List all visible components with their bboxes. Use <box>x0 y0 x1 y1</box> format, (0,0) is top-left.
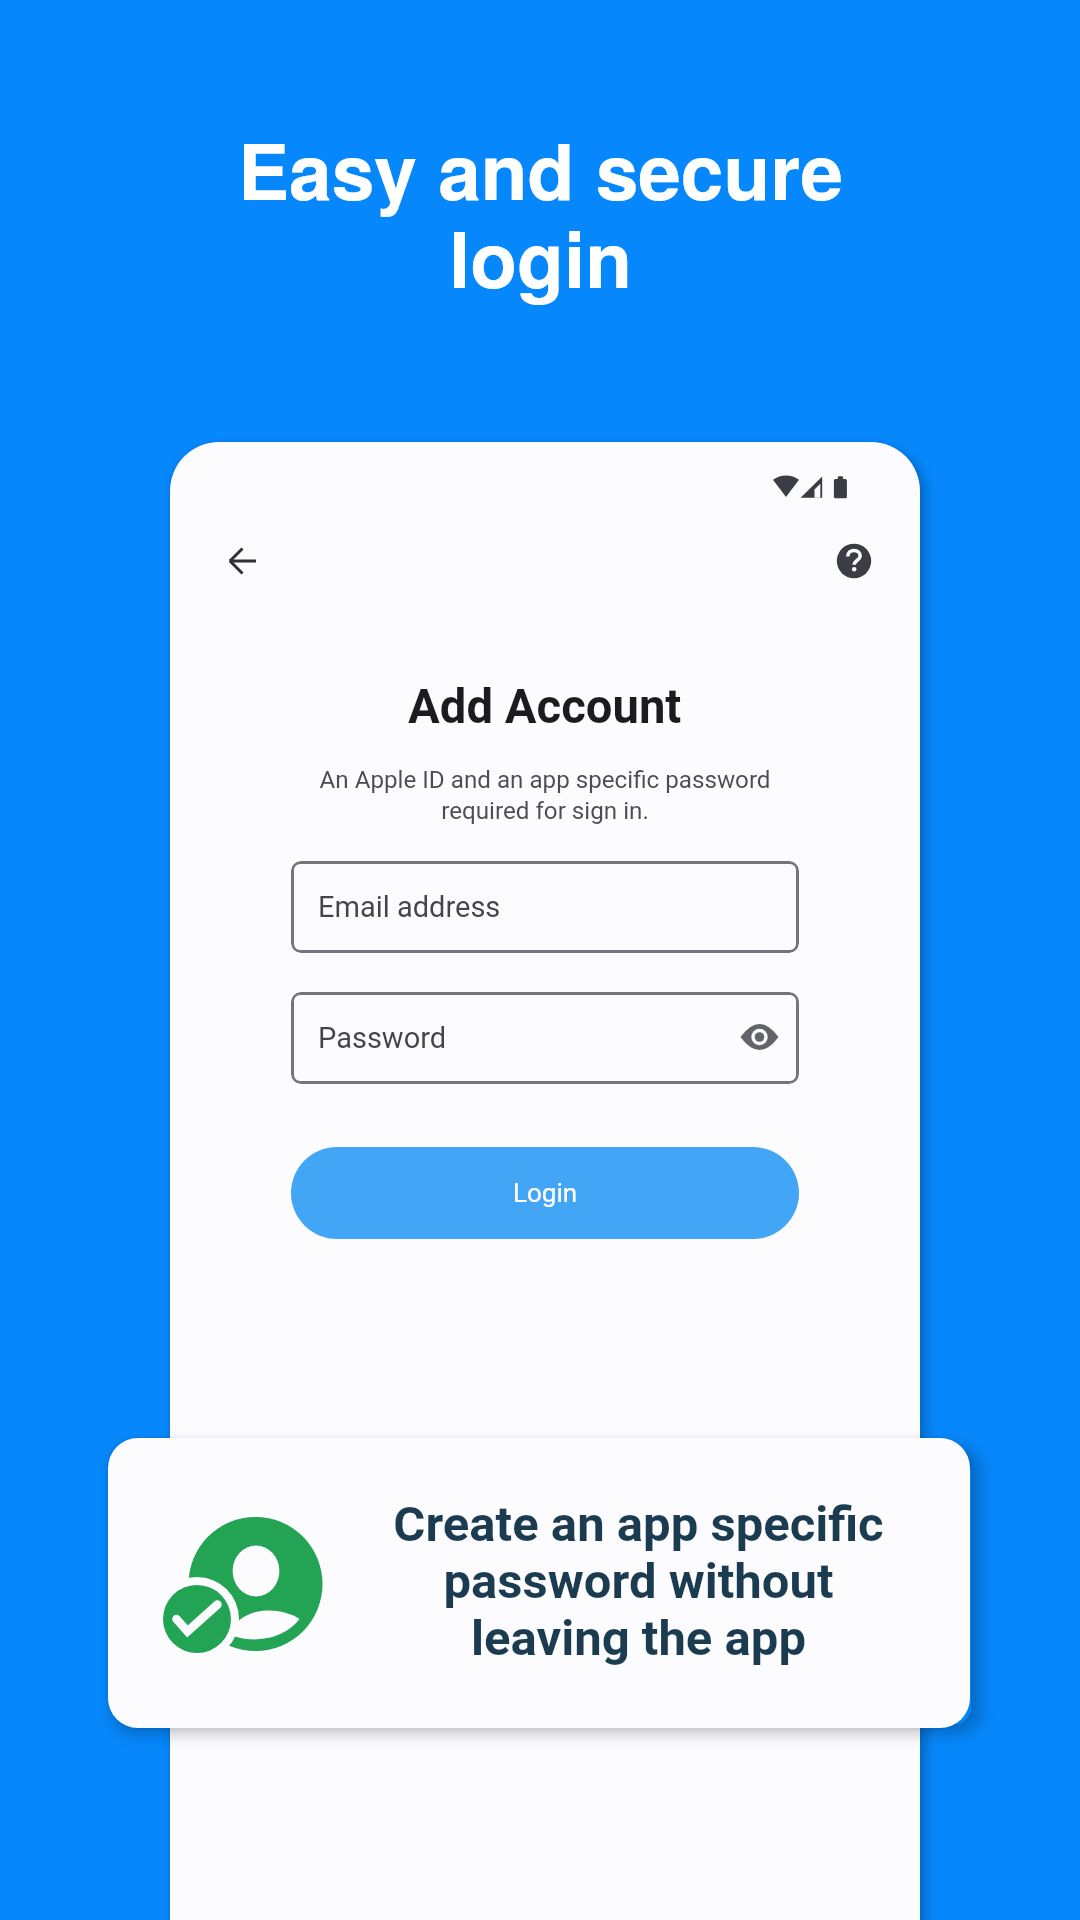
staticText: Password <box>318 1021 447 1055</box>
button[interactable]: Login <box>291 1147 799 1239</box>
button[interactable]: Email address <box>291 861 799 953</box>
staticText: An Apple ID and an app specific password… <box>319 766 771 825</box>
staticText: Add Account <box>408 679 682 734</box>
button[interactable]: Password <box>291 992 799 1084</box>
staticText: Easy and secure login <box>238 114 843 312</box>
staticText: Email address <box>318 890 501 924</box>
button[interactable]: Help <box>836 543 872 579</box>
staticText: Create an app specific password without … <box>393 1496 884 1667</box>
button[interactable]: Back <box>213 531 273 591</box>
button[interactable]: Show password <box>732 1010 788 1066</box>
staticText: Login <box>513 1178 578 1208</box>
